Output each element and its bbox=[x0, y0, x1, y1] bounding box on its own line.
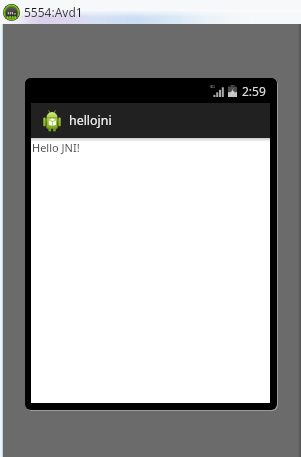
staticText: 5554:Avd1 bbox=[24, 4, 83, 20]
button[interactable]: hellojni bbox=[31, 103, 270, 138]
staticText: 2:59 bbox=[242, 83, 266, 99]
staticText: Hello JNI! bbox=[32, 140, 80, 155]
staticText: hellojni bbox=[69, 112, 112, 129]
